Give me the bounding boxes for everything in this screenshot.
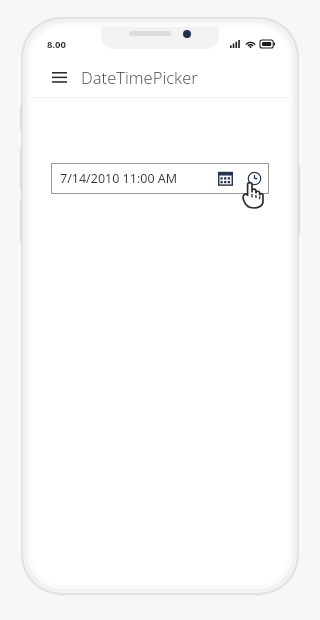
staticText: 8.00 xyxy=(47,38,66,51)
staticText: 7/14/2010 11:00 AM xyxy=(60,170,211,187)
button[interactable]: 7/14/2010 11:00 AM xyxy=(51,163,269,194)
button[interactable]: Pick time xyxy=(240,163,269,194)
button[interactable]: Menu xyxy=(45,63,73,91)
staticText: DateTimePicker xyxy=(81,66,198,88)
button[interactable]: Pick date xyxy=(211,163,240,194)
